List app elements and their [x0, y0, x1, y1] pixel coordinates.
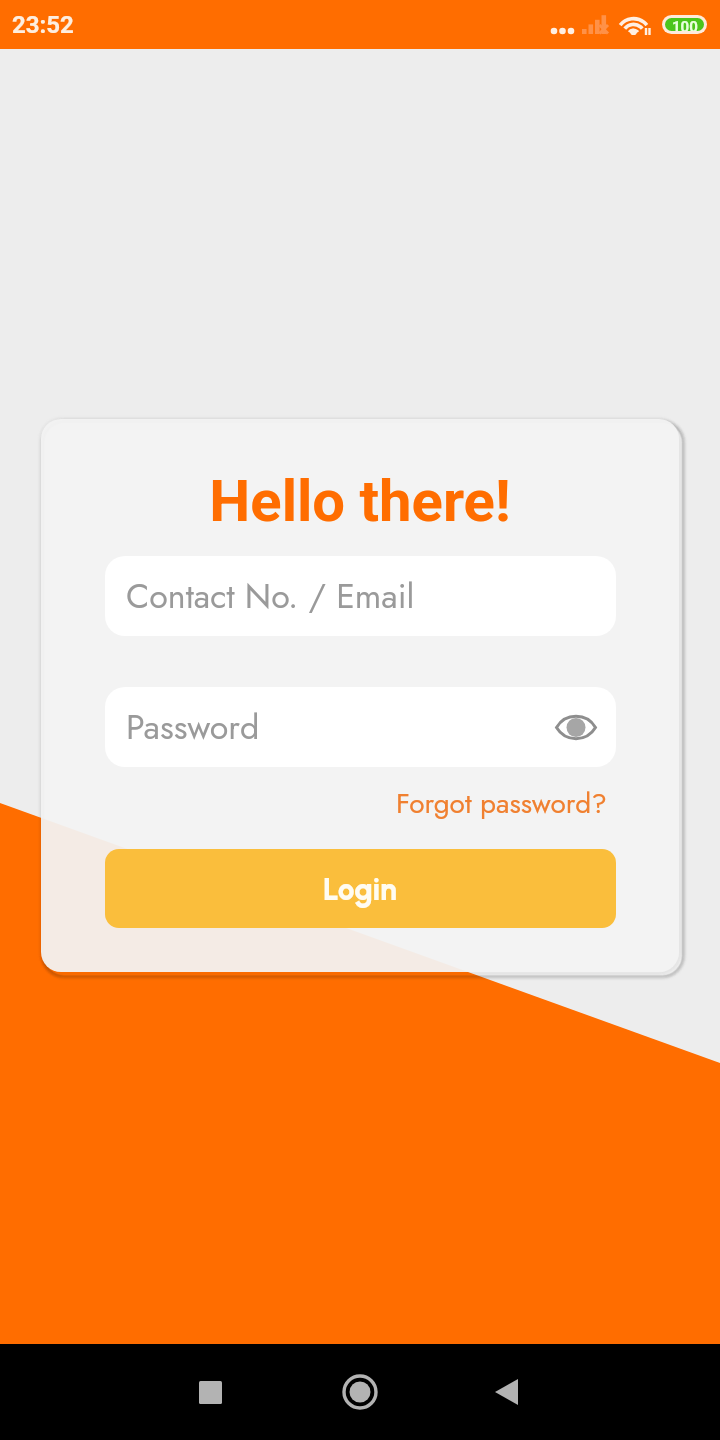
- button[interactable]: Password: [105, 687, 616, 767]
- button[interactable]: Home: [326, 1358, 394, 1426]
- staticText: Forgot password?: [396, 783, 607, 821]
- staticText: Password: [126, 703, 260, 752]
- button[interactable]: Forgot password?: [307, 783, 607, 821]
- staticText: Hello there!: [41, 467, 679, 535]
- button[interactable]: Login: [105, 849, 616, 928]
- button[interactable]: Show password: [547, 687, 605, 767]
- staticText: Login: [323, 871, 398, 907]
- staticText: 100: [672, 18, 698, 31]
- button[interactable]: Contact No. / Email: [105, 556, 616, 636]
- button[interactable]: Recent apps: [176, 1358, 244, 1426]
- staticText: Contact No. / Email: [126, 572, 415, 621]
- staticText: 23:52: [12, 11, 74, 39]
- button[interactable]: Back: [472, 1358, 540, 1426]
